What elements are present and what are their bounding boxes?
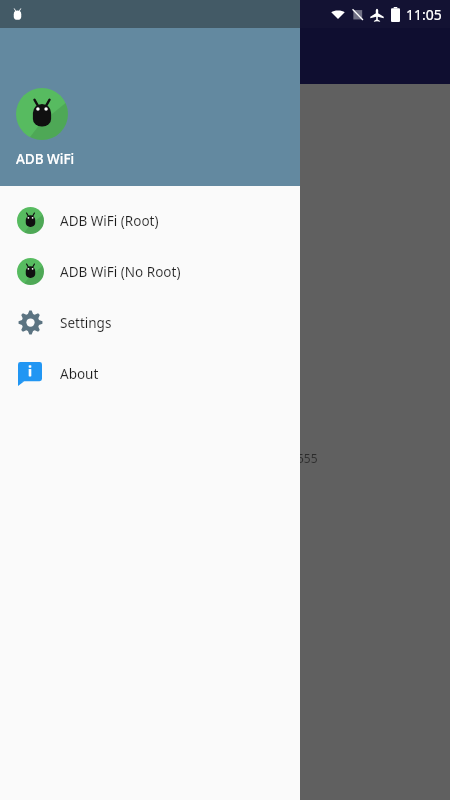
staticText: 555	[297, 450, 318, 466]
button[interactable]: ADB WiFi (No Root)	[0, 246, 300, 297]
button[interactable]: About	[0, 348, 300, 399]
staticText: Settings	[60, 314, 112, 332]
button[interactable]: ADB WiFi (Root)	[0, 195, 300, 246]
staticText: 11:05	[406, 5, 442, 24]
staticText: ADB WiFi	[16, 150, 75, 168]
button[interactable]: Settings	[0, 297, 300, 348]
staticText: About	[60, 365, 99, 383]
staticText: ADB WiFi (Root)	[60, 212, 159, 230]
staticText: ADB WiFi (No Root)	[60, 263, 181, 281]
